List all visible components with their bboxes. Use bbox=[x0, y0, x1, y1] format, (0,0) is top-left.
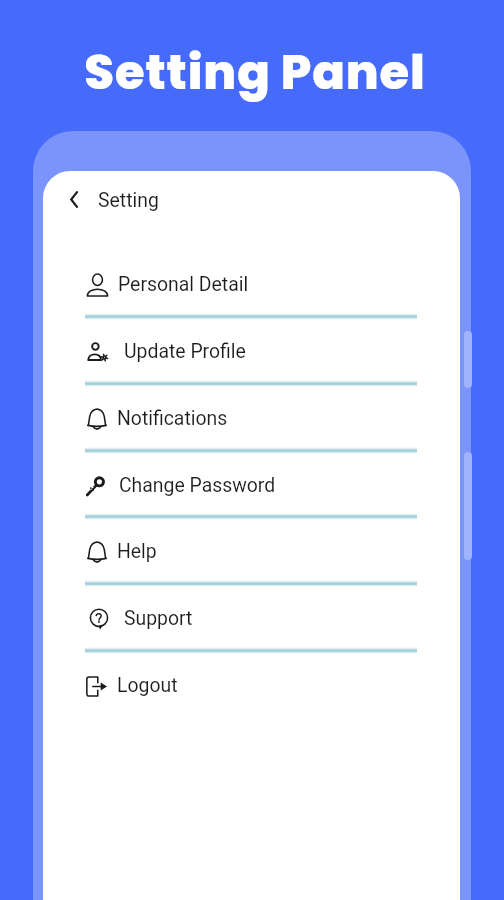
staticText: Notifications bbox=[117, 407, 228, 430]
button[interactable] bbox=[80, 663, 422, 709]
button[interactable] bbox=[80, 463, 422, 509]
button[interactable] bbox=[80, 262, 422, 308]
staticText: Help bbox=[117, 540, 157, 563]
staticText: Change Password bbox=[119, 474, 276, 497]
staticText: Setting Panel bbox=[3, 39, 504, 106]
staticText: Setting bbox=[98, 189, 159, 212]
staticText: Support bbox=[124, 607, 193, 630]
button[interactable] bbox=[80, 596, 422, 642]
staticText: Logout bbox=[117, 674, 178, 697]
staticText: Update Profile bbox=[124, 340, 246, 363]
button[interactable] bbox=[80, 396, 422, 442]
button[interactable]: Back bbox=[62, 184, 166, 216]
button[interactable] bbox=[80, 329, 422, 375]
button[interactable] bbox=[80, 529, 422, 575]
staticText: Personal Detail bbox=[118, 273, 249, 296]
